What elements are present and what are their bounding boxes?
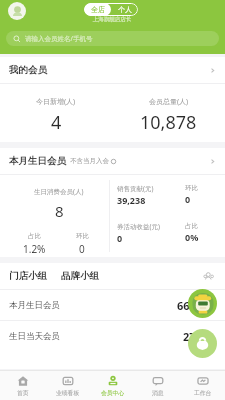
button[interactable]: 门店小组 <box>9 270 47 282</box>
staticText: 8 <box>55 201 64 221</box>
button[interactable]: Shop <box>188 329 217 358</box>
staticText: 生日消费会员(人) <box>34 187 84 196</box>
staticText: 本月生日会员 <box>9 155 66 167</box>
staticText: 消息 <box>152 389 164 396</box>
staticText: 销售贡献(元) <box>117 184 154 193</box>
button[interactable]: Members <box>202 270 215 283</box>
button[interactable]: 首页 <box>0 371 45 400</box>
button[interactable]: 请输入会员姓名/手机号 <box>6 31 219 46</box>
button[interactable]: 本月生日会员 <box>9 290 213 320</box>
button[interactable]: 全店 <box>84 3 111 16</box>
staticText: 环比 <box>185 184 198 192</box>
button[interactable]: 生日当天会员 <box>9 321 213 351</box>
staticText: 27 <box>183 329 196 344</box>
button[interactable]: 业绩看板 <box>45 371 90 400</box>
staticText: 本月生日会员 <box>9 300 60 311</box>
staticText: 环比 <box>76 232 89 240</box>
staticText: 会员中心 <box>101 389 125 396</box>
staticText: 会员总量(人) <box>149 97 189 107</box>
button[interactable]: 消息 <box>135 371 180 400</box>
staticText: 请输入会员姓名/手机号 <box>25 34 93 43</box>
staticText: 1.2% <box>23 242 46 256</box>
staticText: 占比 <box>185 222 198 230</box>
staticText: 上海旗舰店店长 <box>86 16 138 23</box>
button[interactable]: 品牌小组 <box>61 270 99 282</box>
staticText: 不含当月入会 <box>70 157 109 165</box>
staticText: 39,238 <box>117 194 146 206</box>
staticText: 个人 <box>118 5 132 14</box>
button[interactable]: 我的会员 <box>9 57 216 83</box>
staticText: 业绩看板 <box>56 389 80 396</box>
staticText: 工作台 <box>194 389 212 396</box>
staticText: 今日新增(人) <box>36 97 76 107</box>
staticText: 首页 <box>17 389 29 396</box>
staticText: 品牌小组 <box>61 270 99 282</box>
staticText: 4 <box>51 110 62 135</box>
staticText: 0% <box>185 231 199 243</box>
staticText: 我的会员 <box>9 64 47 76</box>
button[interactable]: 工作台 <box>180 371 225 400</box>
staticText: 生日当天会员 <box>9 331 60 342</box>
button[interactable]: 本月生日会员 <box>9 148 216 174</box>
button[interactable]: Profile <box>8 2 26 20</box>
staticText: 门店小组 <box>9 270 47 282</box>
staticText: 0 <box>117 232 123 244</box>
button[interactable]: Assistant <box>188 289 217 318</box>
staticText: 全店 <box>91 5 105 14</box>
staticText: 券活动收益(元) <box>117 222 160 231</box>
staticText: 0 <box>185 193 191 205</box>
staticText: 0 <box>79 242 85 256</box>
staticText: 10,878 <box>140 110 197 135</box>
button[interactable]: 会员中心 <box>90 371 135 400</box>
button[interactable]: 个人 <box>111 3 138 16</box>
staticText: 662 <box>177 298 196 313</box>
staticText: 占比 <box>28 232 41 240</box>
